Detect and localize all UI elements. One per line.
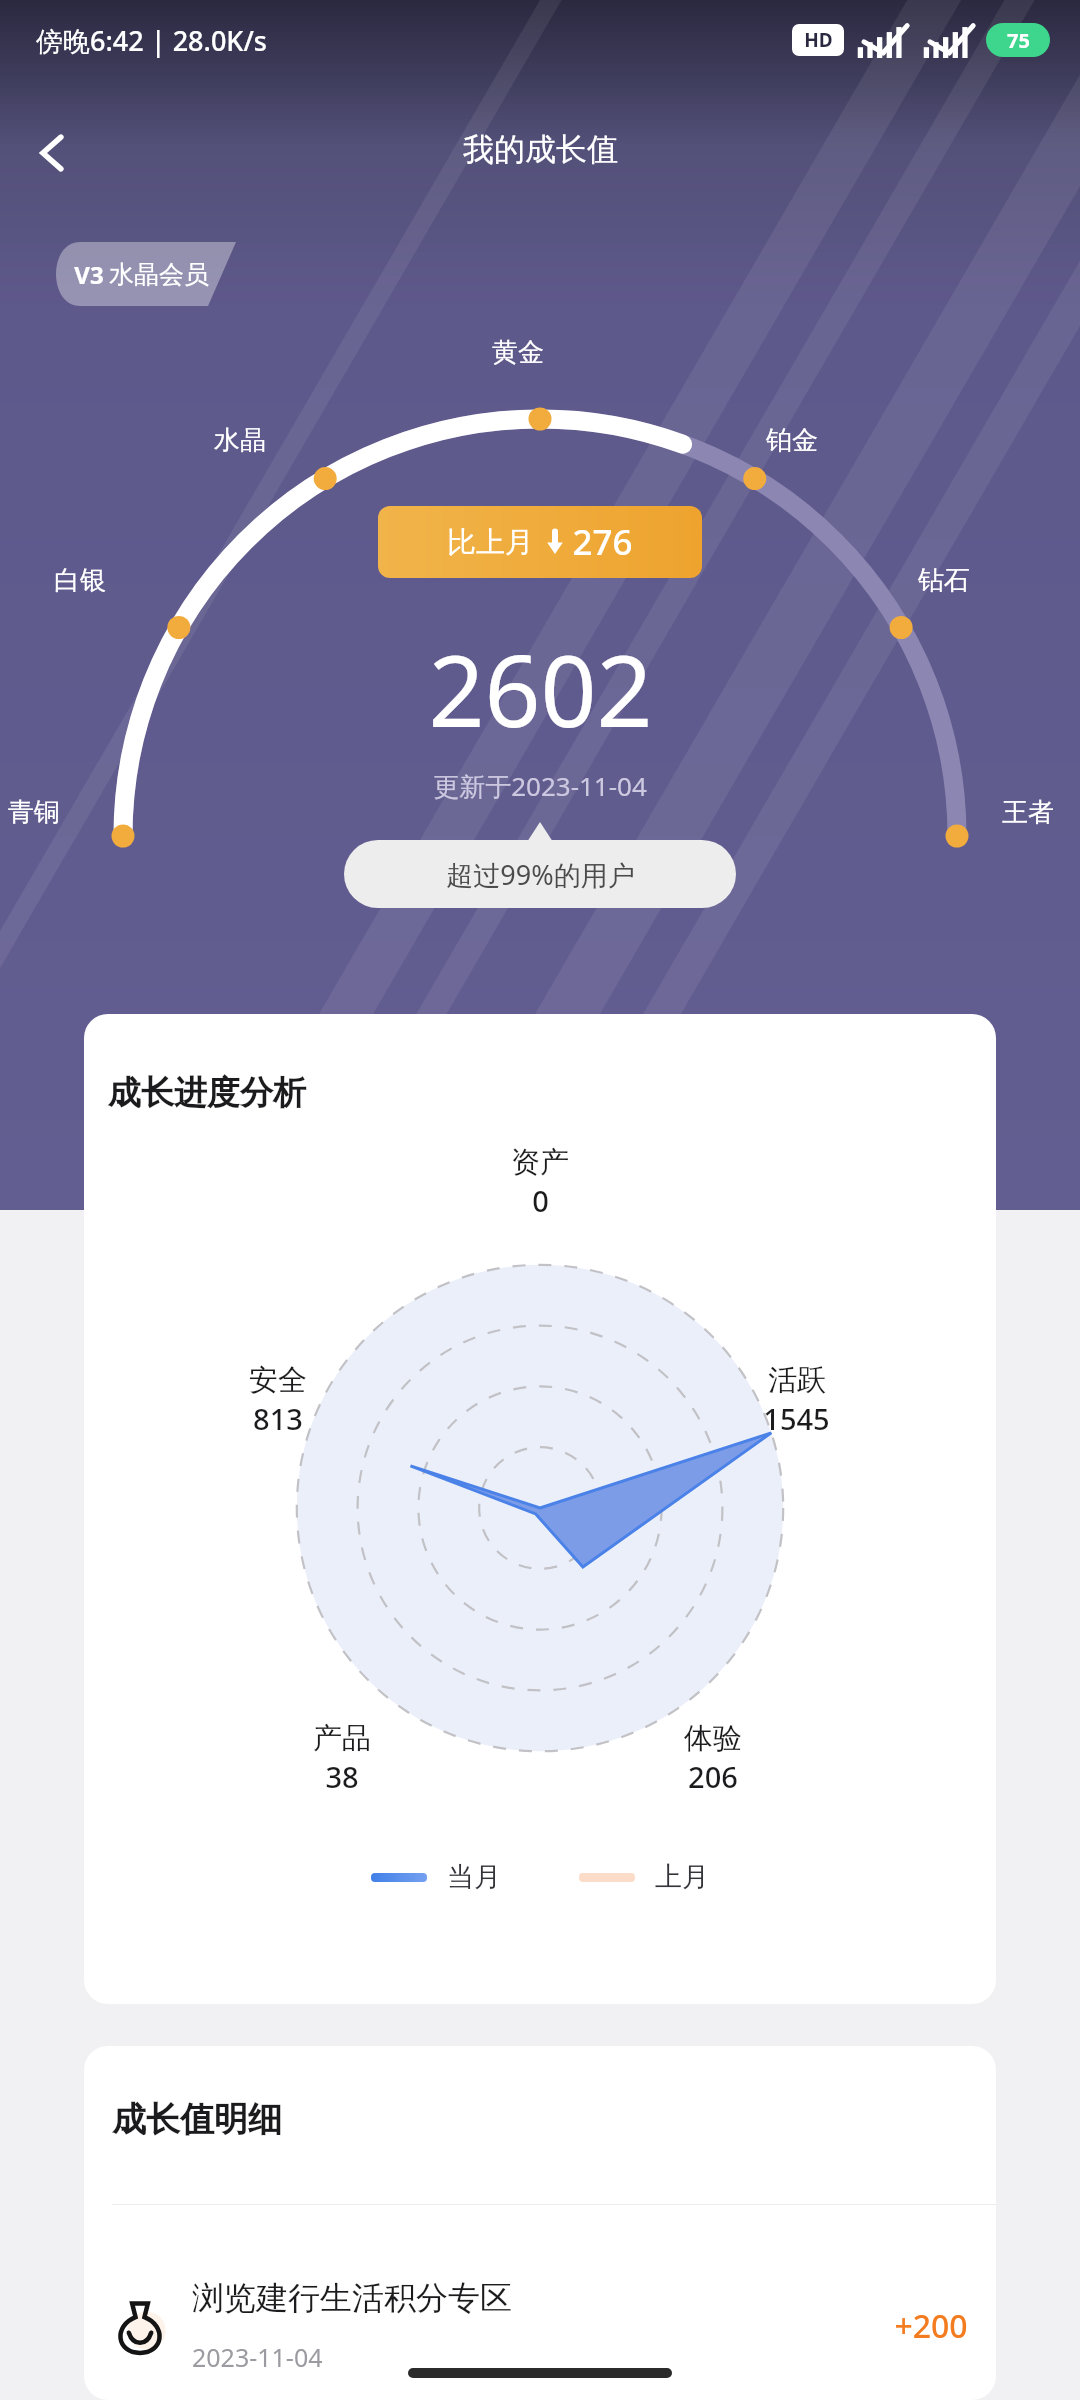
staticText: 上月	[655, 1860, 709, 1894]
staticText: 黄金	[492, 336, 544, 369]
button[interactable]: 浏览建行生活积分专区	[112, 2236, 968, 2400]
staticText: HD	[804, 27, 833, 53]
staticText: 超过99%的用户	[446, 856, 635, 893]
staticText: V3	[74, 258, 104, 291]
button[interactable]: 成长进度分析	[84, 1014, 996, 2004]
button[interactable]: 返回	[20, 120, 86, 186]
staticText: 浏览建行生活积分专区	[192, 2278, 512, 2318]
staticText: 王者	[1002, 796, 1054, 829]
staticText: 水晶	[214, 424, 266, 457]
button[interactable]: 超过99%的用户	[344, 840, 736, 908]
staticText: 2023-11-04	[192, 2340, 323, 2374]
staticText: 水晶会员	[109, 259, 209, 290]
staticText: 当月	[447, 1860, 501, 1894]
staticText: 钻石	[918, 564, 970, 597]
staticText: 傍晚6:42 | 28.0K/s	[36, 22, 267, 59]
staticText: 1545	[763, 1399, 830, 1438]
staticText: 我的成长值	[463, 130, 618, 169]
staticText: 813	[253, 1399, 303, 1438]
staticText: 0	[532, 1181, 549, 1220]
staticText: 成长值明细	[112, 2098, 282, 2141]
staticText: 更新于2023-11-04	[433, 768, 647, 804]
staticText: 比上月	[447, 524, 534, 561]
staticText: 276	[572, 518, 633, 566]
staticText: 铂金	[766, 424, 818, 457]
staticText: 成长进度分析	[108, 1072, 306, 1114]
staticText: 体验	[684, 1720, 742, 1757]
button[interactable]: 比上月	[378, 506, 702, 578]
staticText: 活跃	[768, 1362, 826, 1399]
staticText: 2602	[428, 622, 653, 755]
staticText: 75	[1007, 27, 1030, 54]
staticText: 青铜	[8, 796, 60, 829]
staticText: 资产	[511, 1144, 569, 1181]
staticText: 38	[325, 1757, 359, 1796]
staticText: +200	[894, 2304, 968, 2348]
staticText: 安全	[249, 1362, 307, 1399]
staticText: 206	[688, 1757, 738, 1796]
staticText: 产品	[313, 1720, 371, 1757]
staticText: 白银	[54, 564, 106, 597]
